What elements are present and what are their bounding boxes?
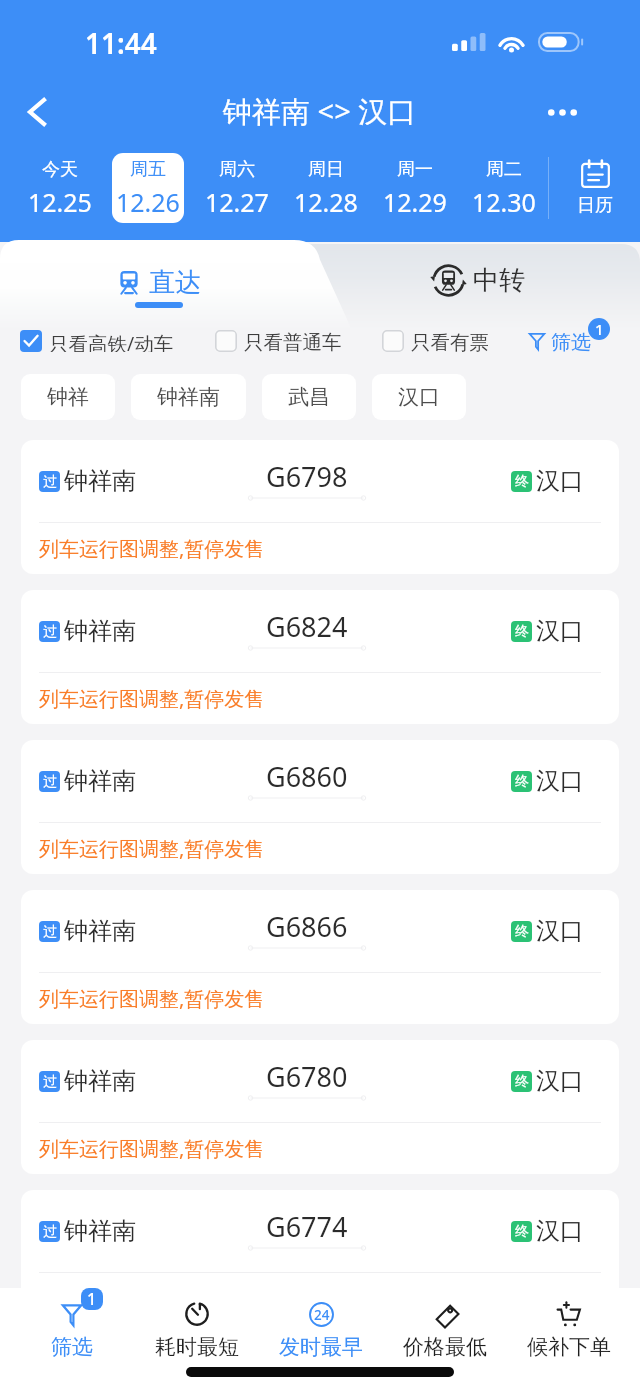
button[interactable]: 日历 xyxy=(549,139,640,237)
staticText: 周一 xyxy=(397,158,433,181)
staticText: 汉口 xyxy=(536,616,584,646)
staticText: 只看有票 xyxy=(411,330,489,352)
staticText: 武昌 xyxy=(288,384,330,410)
button[interactable]: 过 xyxy=(21,440,619,574)
button[interactable]: 周日 xyxy=(289,153,362,223)
staticText: 终 xyxy=(515,1223,529,1241)
staticText: 过 xyxy=(43,1223,57,1241)
staticText: 列车运行图调整,暂停发售 xyxy=(39,835,265,862)
staticText: 12.27 xyxy=(205,185,269,219)
staticText: 钟祥南 xyxy=(157,384,220,410)
staticText: 钟祥南 xyxy=(64,916,136,946)
staticText: 过 xyxy=(43,923,57,941)
button[interactable]: 周二 xyxy=(467,153,540,223)
staticText: 钟祥南 <> 汉口 xyxy=(223,91,417,131)
button[interactable]: 武昌 xyxy=(262,374,356,420)
staticText: 钟祥南 xyxy=(64,1216,136,1246)
staticText: G6780 xyxy=(266,1058,348,1095)
staticText: 1 xyxy=(595,319,604,339)
button[interactable]: 钟祥 xyxy=(21,374,115,420)
staticText: 耗时最短 xyxy=(155,1334,239,1360)
button[interactable]: 1 xyxy=(9,1299,134,1360)
staticText: 价格最低 xyxy=(403,1334,487,1360)
staticText: 列车运行图调整,暂停发售 xyxy=(39,985,265,1012)
staticText: 终 xyxy=(515,1073,529,1091)
staticText: 24 xyxy=(314,1306,330,1324)
button[interactable]: 周六 xyxy=(200,153,273,223)
button[interactable]: 过 xyxy=(21,890,619,1024)
staticText: 筛选 xyxy=(51,1334,93,1360)
staticText: 候补下单 xyxy=(527,1334,611,1360)
button[interactable]: 筛选 xyxy=(529,330,591,352)
staticText: 过 xyxy=(43,773,57,791)
button[interactable]: 只看普通车 xyxy=(215,330,342,352)
staticText: 12.30 xyxy=(472,185,536,219)
staticText: 日历 xyxy=(577,194,613,217)
staticText: 终 xyxy=(515,773,529,791)
staticText: 终 xyxy=(515,923,529,941)
staticText: G6798 xyxy=(266,458,348,495)
button[interactable]: 汉口 xyxy=(372,374,466,420)
staticText: 周日 xyxy=(308,158,344,181)
staticText: 今天 xyxy=(42,158,78,181)
staticText: 列车运行图调整,暂停发售 xyxy=(39,1285,265,1312)
staticText: 周二 xyxy=(486,158,522,181)
staticText: 12.29 xyxy=(383,185,447,219)
staticText: 中转 xyxy=(473,264,525,297)
button[interactable]: 今天 xyxy=(24,153,96,223)
staticText: 12.25 xyxy=(28,185,92,219)
staticText: 钟祥 xyxy=(47,384,89,410)
staticText: 筛选 xyxy=(551,330,591,352)
staticText: 汉口 xyxy=(536,1066,584,1096)
staticText: 过 xyxy=(43,1073,57,1091)
button[interactable]: 耗时最短 xyxy=(134,1299,259,1360)
button[interactable]: 钟祥南 xyxy=(131,374,246,420)
staticText: 直达 xyxy=(149,266,201,299)
staticText: 周五 xyxy=(130,158,166,181)
staticText: 1 xyxy=(87,1288,97,1310)
staticText: 钟祥南 xyxy=(64,466,136,496)
staticText: 列车运行图调整,暂停发售 xyxy=(39,535,265,562)
button[interactable]: 24 xyxy=(259,1299,383,1360)
staticText: 周六 xyxy=(219,158,255,181)
staticText: 列车运行图调整,暂停发售 xyxy=(39,685,265,712)
staticText: 钟祥南 xyxy=(64,616,136,646)
staticText: 列车运行图调整,暂停发售 xyxy=(39,1135,265,1162)
staticText: 终 xyxy=(515,473,529,491)
staticText: 只看普通车 xyxy=(244,330,342,352)
staticText: 发时最早 xyxy=(279,1334,363,1360)
button[interactable]: 周五 xyxy=(112,153,184,223)
staticText: 汉口 xyxy=(536,1216,584,1246)
button[interactable]: 候补下单 xyxy=(507,1299,631,1360)
button[interactable]: 过 xyxy=(21,590,619,724)
staticText: 汉口 xyxy=(536,466,584,496)
staticText: 汉口 xyxy=(536,766,584,796)
button[interactable]: 价格最低 xyxy=(383,1299,507,1360)
staticText: 钟祥南 xyxy=(64,1066,136,1096)
staticText: 汉口 xyxy=(398,384,440,410)
staticText: G6824 xyxy=(266,608,348,645)
button[interactable]: 过 xyxy=(21,1040,619,1174)
staticText: G6866 xyxy=(266,908,348,945)
button[interactable]: More options xyxy=(533,80,591,138)
button[interactable]: Back xyxy=(8,80,66,138)
button[interactable]: 直达 xyxy=(0,240,317,312)
button[interactable]: 过 xyxy=(21,1190,619,1324)
button[interactable]: 只看高铁/动车 xyxy=(20,330,174,352)
staticText: 11:44 xyxy=(85,24,157,62)
staticText: 12.26 xyxy=(116,185,180,219)
staticText: 只看高铁/动车 xyxy=(49,330,174,352)
staticText: G6774 xyxy=(266,1208,348,1245)
staticText: G6860 xyxy=(266,758,348,795)
staticText: 过 xyxy=(43,473,57,491)
button[interactable]: 周一 xyxy=(378,153,451,223)
staticText: 过 xyxy=(43,623,57,641)
button[interactable]: 只看有票 xyxy=(382,330,489,352)
staticText: 终 xyxy=(515,623,529,641)
staticText: 汉口 xyxy=(536,916,584,946)
staticText: 钟祥南 xyxy=(64,766,136,796)
button[interactable]: 过 xyxy=(21,740,619,874)
staticText: 12.28 xyxy=(294,185,358,219)
button[interactable]: 中转 xyxy=(317,240,640,312)
